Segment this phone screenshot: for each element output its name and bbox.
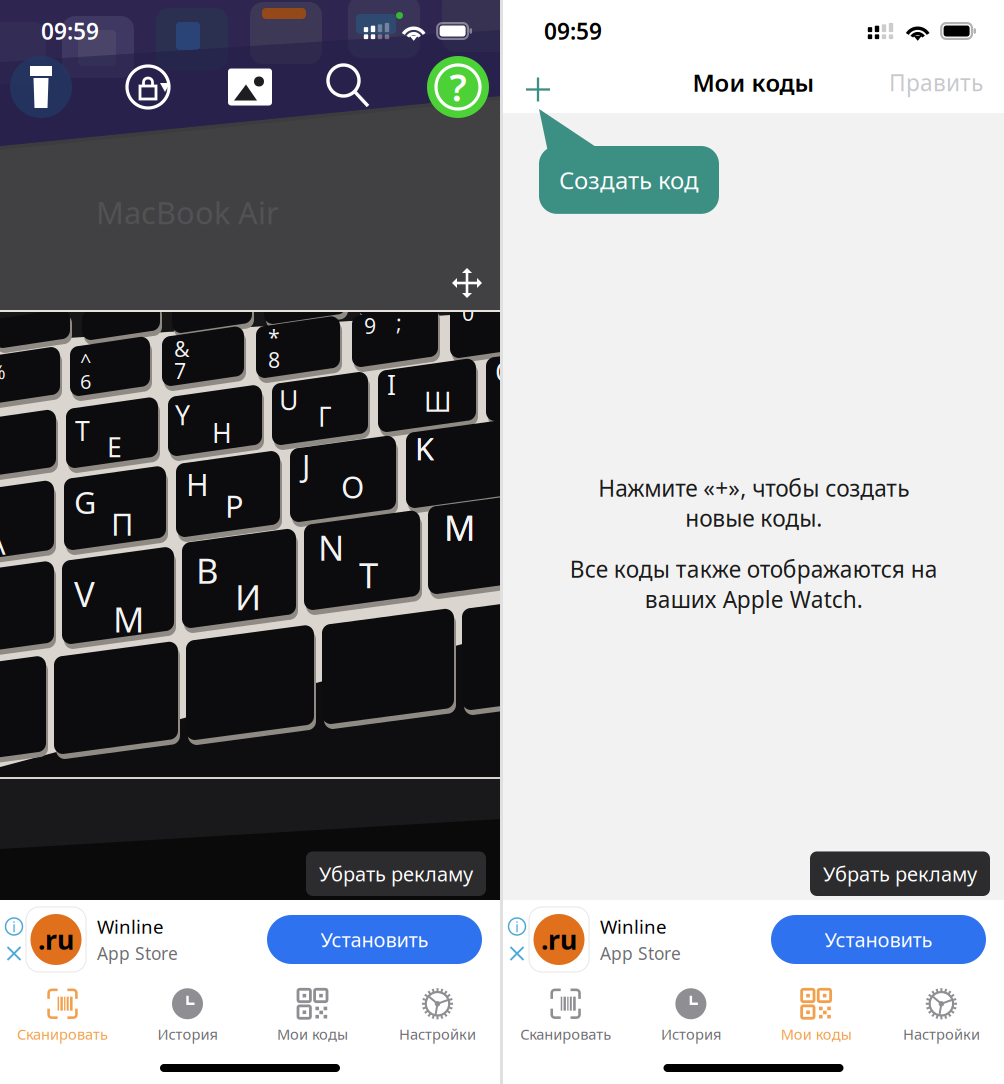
button[interactable]: Сканировать bbox=[503, 981, 628, 1048]
staticText: Мои коды bbox=[781, 1024, 852, 1044]
button[interactable]: Информация об объявлении bbox=[507, 917, 526, 936]
button[interactable]: Закрыть рекламу bbox=[5, 945, 22, 962]
button[interactable]: Справка bbox=[427, 56, 489, 118]
staticText: Нажмите «+», чтобы создать новые коды. bbox=[598, 473, 909, 533]
button[interactable]: Блокировка поворота bbox=[124, 63, 172, 111]
staticText: Р bbox=[225, 485, 244, 526]
staticText: Мои коды bbox=[277, 1024, 348, 1044]
staticText: Y bbox=[175, 397, 190, 433]
staticText: Г bbox=[318, 399, 332, 434]
staticText: i bbox=[515, 917, 519, 936]
button[interactable]: Закрыть рекламу bbox=[508, 945, 525, 962]
staticText: Сканировать bbox=[17, 1024, 108, 1044]
staticText: Создать код bbox=[559, 164, 699, 196]
staticText: М bbox=[113, 596, 144, 642]
staticText: .ru bbox=[38, 922, 74, 957]
staticText: B bbox=[196, 547, 219, 593]
staticText: Убрать рекламу bbox=[319, 860, 473, 887]
staticText: Настройки bbox=[903, 1024, 980, 1044]
staticText: ^ bbox=[80, 347, 91, 373]
staticText: Т bbox=[359, 552, 378, 598]
button[interactable]: Установить bbox=[771, 915, 986, 964]
button[interactable]: Поиск bbox=[328, 65, 372, 109]
staticText: A bbox=[0, 522, 6, 563]
button[interactable]: Информация об объявлении bbox=[4, 917, 23, 936]
staticText: Ш bbox=[424, 384, 452, 419]
staticText: Установить bbox=[320, 926, 428, 953]
button[interactable]: Установить bbox=[267, 915, 482, 964]
button[interactable]: Мои коды bbox=[250, 981, 375, 1048]
staticText: Убрать рекламу bbox=[823, 860, 977, 887]
staticText: Установить bbox=[824, 926, 932, 953]
staticText: * bbox=[268, 323, 280, 351]
staticText: H bbox=[212, 415, 232, 450]
button[interactable]: Сканировать bbox=[0, 981, 125, 1048]
staticText: Сканировать bbox=[520, 1024, 611, 1044]
staticText: О bbox=[341, 466, 364, 507]
staticText: T bbox=[75, 413, 90, 448]
button[interactable]: История bbox=[125, 981, 250, 1048]
staticText: M bbox=[444, 504, 475, 550]
button[interactable]: Настройки bbox=[375, 981, 500, 1048]
button[interactable]: Убрать рекламу bbox=[810, 851, 990, 896]
staticText: U bbox=[279, 382, 298, 418]
button[interactable]: Выбрать фото bbox=[227, 67, 273, 107]
staticText: Править bbox=[889, 67, 983, 97]
staticText: MacBook Air bbox=[96, 192, 279, 233]
staticText: ? bbox=[449, 62, 466, 112]
staticText: App Store bbox=[97, 942, 178, 965]
staticText: История bbox=[661, 1024, 721, 1044]
button[interactable]: Убрать рекламу bbox=[306, 851, 486, 896]
staticText: ; bbox=[396, 308, 402, 336]
staticText: .ru bbox=[541, 922, 577, 957]
staticText: 09:59 bbox=[544, 16, 602, 46]
staticText: App Store bbox=[600, 942, 681, 965]
staticText: & bbox=[174, 335, 190, 363]
staticText: K bbox=[415, 428, 434, 469]
button[interactable]: Создать код bbox=[522, 55, 572, 109]
staticText: П bbox=[111, 504, 133, 544]
staticText: O bbox=[495, 354, 516, 389]
staticText: J bbox=[302, 445, 310, 485]
staticText: G bbox=[74, 482, 96, 523]
staticText: N bbox=[318, 524, 344, 570]
staticText: Winline bbox=[97, 914, 164, 939]
button[interactable]: Фонарик bbox=[13, 59, 69, 115]
staticText: 8 bbox=[268, 346, 280, 374]
staticText: Мои коды bbox=[692, 67, 814, 98]
button[interactable]: Настройки bbox=[879, 981, 1004, 1048]
staticText: Winline bbox=[600, 914, 667, 939]
staticText: % bbox=[0, 358, 6, 385]
staticText: H bbox=[186, 464, 209, 505]
staticText: 6 bbox=[80, 368, 91, 394]
button[interactable]: Править bbox=[881, 57, 991, 107]
staticText: I bbox=[387, 367, 396, 402]
staticText: E bbox=[107, 429, 122, 465]
staticText: i bbox=[12, 917, 16, 936]
staticText: 09:59 bbox=[41, 16, 99, 46]
staticText: Все коды также отображаются на ваших App… bbox=[569, 554, 937, 614]
staticText: История bbox=[157, 1024, 217, 1044]
staticText: 0 bbox=[462, 299, 474, 327]
staticText: 9 bbox=[364, 312, 376, 340]
staticText: K bbox=[415, 428, 434, 469]
staticText: И bbox=[235, 574, 261, 620]
staticText: V bbox=[74, 571, 95, 617]
staticText: Настройки bbox=[399, 1024, 476, 1044]
button[interactable]: Мои коды bbox=[753, 981, 879, 1048]
staticText: M bbox=[444, 504, 475, 550]
staticText: 7 bbox=[174, 357, 186, 385]
button[interactable]: История bbox=[628, 981, 753, 1048]
